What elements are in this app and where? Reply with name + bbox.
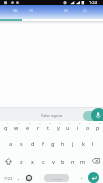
staticText: 7 (69, 121, 71, 124)
staticText: PT·EN·ES (52, 177, 62, 180)
staticText: 1:24 (89, 0, 97, 5)
staticText: 8 (79, 121, 81, 124)
staticText: n (71, 158, 75, 165)
staticText: e (26, 124, 30, 131)
staticText: x (31, 158, 34, 165)
button[interactable]: i (73, 120, 83, 134)
staticText: , (18, 174, 20, 181)
button[interactable]: a (5, 136, 16, 150)
staticText: i (77, 124, 79, 131)
button[interactable] (0, 154, 16, 168)
staticText: h (61, 140, 65, 147)
staticText: BH (64, 9, 68, 13)
staticText: l (92, 140, 94, 147)
staticText: u (66, 124, 70, 131)
staticText: w (14, 124, 19, 131)
staticText: MB (13, 9, 18, 13)
staticText: c (42, 158, 45, 165)
button[interactable] (88, 172, 99, 183)
button[interactable]: d (27, 136, 38, 150)
button[interactable]: n (68, 154, 78, 168)
button[interactable] (88, 154, 103, 168)
staticText: 3 (29, 121, 31, 124)
staticText: v (52, 158, 55, 165)
button[interactable]: h (58, 136, 68, 150)
button[interactable]: p (93, 120, 103, 134)
staticText: 6 (59, 121, 61, 124)
button[interactable]: o (83, 120, 93, 134)
button[interactable]: l (88, 136, 98, 150)
button[interactable]: m (78, 154, 88, 168)
staticText: . (81, 174, 83, 181)
button[interactable]: s (16, 136, 27, 150)
button[interactable]: b (58, 154, 68, 168)
staticText: k (82, 140, 85, 147)
staticText: 4 (39, 121, 41, 124)
button[interactable]: v (48, 154, 58, 168)
staticText: 1 (7, 121, 9, 124)
button[interactable]: k (78, 136, 88, 150)
staticText: a (9, 140, 13, 147)
button[interactable]: t (43, 120, 53, 134)
staticText: r (37, 124, 40, 131)
button[interactable]: u (63, 120, 73, 134)
staticText: d (31, 140, 35, 147)
button[interactable]: y (53, 120, 63, 134)
button[interactable]: e (22, 120, 33, 134)
staticText: Falar agora (41, 113, 63, 118)
staticText: 4,2 (83, 9, 87, 13)
staticText: q (4, 124, 8, 131)
staticText: 5 (49, 121, 51, 124)
button[interactable]: f (38, 136, 48, 150)
staticText: y (57, 124, 60, 131)
button[interactable]: q (0, 120, 11, 134)
staticText: p (96, 124, 100, 131)
staticText: g (51, 140, 55, 147)
button[interactable] (91, 108, 103, 123)
button[interactable] (24, 173, 33, 182)
button[interactable]: z (16, 154, 27, 168)
staticText: z (20, 158, 23, 165)
staticText: ?123 (4, 176, 13, 181)
button[interactable] (0, 5, 103, 19)
button[interactable]: j (68, 136, 78, 150)
button[interactable]: c (38, 154, 48, 168)
button[interactable]: g (48, 136, 58, 150)
staticText: 2 (18, 121, 20, 124)
button[interactable]: x (27, 154, 38, 168)
staticText: f (42, 140, 44, 147)
staticText: 9 (89, 121, 91, 124)
button[interactable]: PT·EN·ES (44, 174, 69, 182)
button[interactable]: . (78, 173, 86, 182)
button[interactable]: , (14, 173, 23, 182)
button[interactable]: r (33, 120, 43, 134)
button[interactable] (0, 108, 103, 121)
staticText: s (20, 140, 23, 147)
staticText: t (47, 124, 49, 131)
staticText: o (86, 124, 90, 131)
button[interactable]: w (11, 120, 22, 134)
staticText: CD (29, 9, 33, 13)
staticText: m (80, 158, 86, 165)
staticText: 0 (99, 121, 101, 124)
button[interactable]: ?123 (1, 174, 15, 182)
staticText: j (72, 140, 74, 147)
staticText: b (61, 158, 65, 165)
